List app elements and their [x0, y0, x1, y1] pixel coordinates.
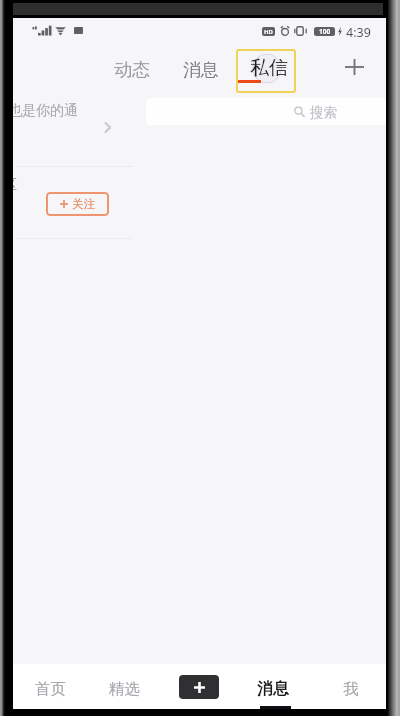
button[interactable]: 我: [311, 664, 386, 709]
button[interactable]: Create post: [179, 675, 219, 699]
staticText: 动态: [114, 59, 150, 82]
staticText: 精选: [109, 679, 140, 699]
button[interactable]: 消息: [236, 664, 311, 709]
staticText: 首页: [35, 679, 66, 699]
staticText: 私信: [250, 56, 288, 80]
staticText: 100: [319, 27, 331, 36]
button[interactable]: 搜索: [146, 98, 386, 125]
button[interactable]: 关注: [46, 192, 109, 216]
staticText: 消息: [257, 679, 289, 699]
staticText: 我: [343, 679, 359, 699]
staticText: 消息: [183, 59, 219, 82]
button[interactable]: Add: [337, 50, 371, 84]
staticText: 4:39: [346, 24, 371, 41]
button[interactable]: 首页: [13, 664, 87, 709]
button[interactable]: 私信: [236, 49, 296, 93]
staticText: 搜索: [310, 104, 337, 121]
button[interactable]: 精选: [87, 664, 161, 709]
staticText: HD: [264, 28, 273, 36]
staticText: 关注: [72, 197, 95, 211]
staticText: 也是你的通: [13, 102, 78, 120]
button[interactable]: 消息: [173, 52, 229, 89]
button[interactable]: 动态: [104, 52, 160, 89]
